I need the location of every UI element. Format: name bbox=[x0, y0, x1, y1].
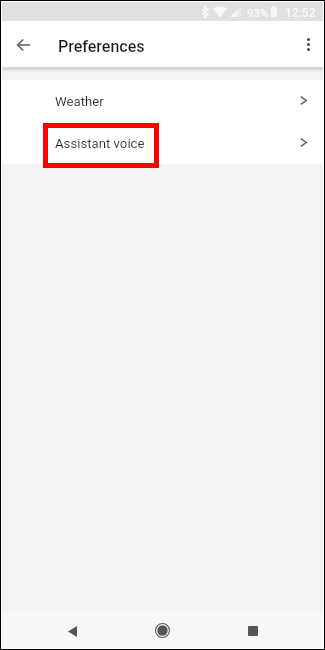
button[interactable]: Assistant voice bbox=[2, 122, 323, 164]
staticText: Preferences bbox=[58, 37, 145, 56]
button[interactable]: Home bbox=[143, 612, 181, 648]
button[interactable]: More options bbox=[292, 28, 324, 60]
button[interactable]: Back bbox=[53, 613, 91, 649]
button[interactable]: Recent apps bbox=[234, 613, 272, 649]
staticText: 12:52 bbox=[285, 6, 316, 20]
staticText: Weather bbox=[55, 94, 104, 109]
button[interactable]: Navigate up bbox=[7, 29, 39, 61]
staticText: Assistant voice bbox=[55, 136, 145, 151]
staticText: 93% bbox=[247, 6, 269, 19]
button[interactable]: Weather bbox=[2, 80, 323, 122]
